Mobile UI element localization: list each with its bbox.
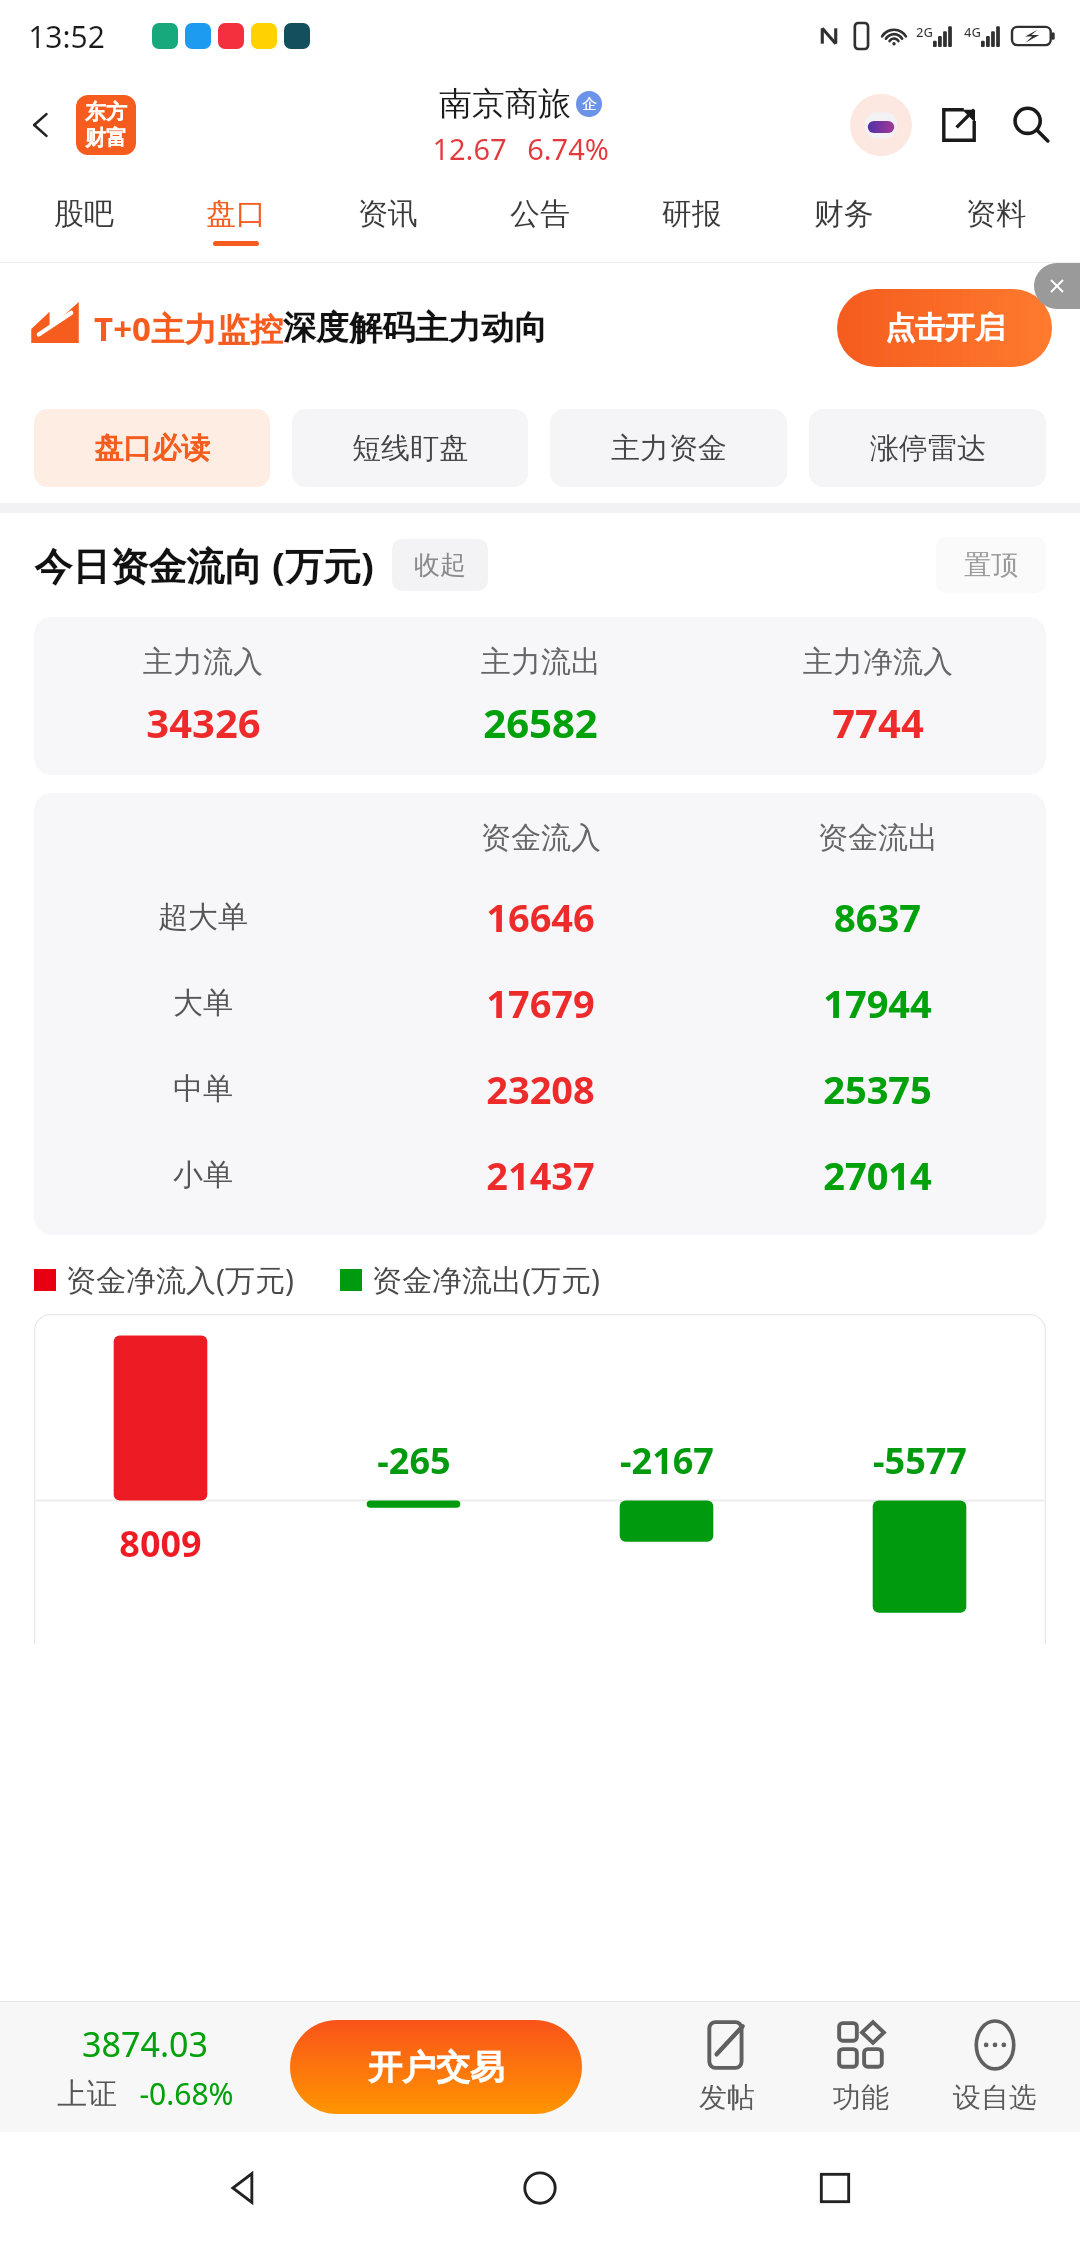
staticText: 资金净流入(万元)	[66, 1259, 294, 1300]
staticText: 资讯	[358, 195, 418, 233]
staticText: 上证	[57, 2075, 117, 2113]
staticText: 小单	[173, 1156, 233, 1194]
staticText: -0.68%	[139, 2073, 234, 2114]
button[interactable]: 开户交易	[290, 2020, 582, 2114]
staticText: 企	[582, 95, 597, 114]
staticText: 21437	[486, 1149, 595, 1201]
staticText: 功能	[833, 2080, 889, 2115]
staticText: 17679	[486, 977, 595, 1029]
staticText: 短线盯盘	[352, 430, 468, 467]
staticText: -265	[377, 1436, 451, 1485]
staticText: 点击开启	[885, 309, 1005, 347]
button[interactable]: 涨停雷达	[809, 409, 1046, 487]
button[interactable]: 功能	[794, 2020, 928, 2115]
button[interactable]: Home	[490, 2138, 590, 2238]
button[interactable]: 发帖	[660, 2020, 794, 2115]
staticText: 8009	[119, 1519, 202, 1568]
button[interactable]: Back	[14, 100, 68, 150]
staticText: 16646	[486, 891, 595, 943]
staticText: 超大单	[158, 898, 248, 936]
button[interactable]: 主力资金	[550, 409, 787, 487]
staticText: 发帖	[699, 2080, 755, 2115]
button[interactable]: Recents	[785, 2138, 885, 2238]
staticText: 股吧	[54, 195, 114, 233]
button[interactable]: 短线盯盘	[292, 409, 528, 487]
button[interactable]: Search	[1000, 94, 1062, 156]
button[interactable]: 财务	[768, 178, 920, 262]
staticText: 3874.03	[82, 2021, 208, 2067]
button[interactable]: Eastmoney	[76, 95, 136, 155]
staticText: -5577	[873, 1436, 967, 1485]
button[interactable]: Close ad	[1034, 263, 1080, 309]
button[interactable]: 盘口必读	[34, 409, 270, 487]
button[interactable]: 研报	[616, 178, 768, 262]
button[interactable]: 3874.03	[0, 2021, 290, 2114]
staticText: 23208	[486, 1063, 595, 1115]
staticText: 深度解码主力动向	[283, 307, 547, 349]
staticText: 资金净流出(万元)	[372, 1259, 600, 1300]
staticText: -2167	[620, 1436, 714, 1485]
button[interactable]: 资料	[920, 178, 1072, 262]
staticText: 主力流入	[143, 643, 263, 681]
staticText: 27014	[823, 1149, 932, 1201]
button[interactable]: 股吧	[8, 178, 160, 262]
button[interactable]: 盘口	[160, 178, 312, 262]
staticText: 4G	[964, 23, 981, 41]
button[interactable]: 资讯	[312, 178, 464, 262]
staticText: 主力资金	[611, 430, 727, 467]
button[interactable]: 收起	[392, 539, 488, 591]
staticText: 东方	[85, 99, 127, 125]
staticText: 13:52	[28, 16, 105, 57]
staticText: 资金流出	[818, 819, 938, 857]
staticText: 收起	[414, 549, 466, 582]
button[interactable]: 公告	[464, 178, 616, 262]
staticText: 盘口必读	[94, 430, 210, 467]
staticText: 26582	[483, 695, 598, 749]
button[interactable]: Back	[195, 2138, 295, 2238]
button[interactable]: 置顶	[936, 537, 1046, 593]
button[interactable]: Share	[928, 94, 990, 156]
staticText: 8637	[834, 891, 921, 943]
staticText: 6.74%	[527, 129, 609, 168]
staticText: 置顶	[964, 548, 1018, 582]
staticText: 公告	[510, 195, 570, 233]
staticText: 资金流入	[481, 819, 601, 857]
staticText: 主力流出	[481, 643, 601, 681]
staticText: 大单	[173, 984, 233, 1022]
staticText: 设自选	[953, 2080, 1037, 2115]
staticText: 今日资金流向 (万元)	[34, 539, 374, 591]
staticText: 盘口	[206, 195, 266, 233]
staticText: 中单	[173, 1070, 233, 1108]
staticText: 主力净流入	[803, 643, 953, 681]
staticText: T+0主力监控	[94, 306, 283, 351]
staticText: 南京商旅	[439, 83, 571, 125]
button[interactable]: 设自选	[928, 2020, 1062, 2115]
staticText: 17944	[823, 977, 932, 1029]
staticText: 财富	[85, 125, 127, 151]
staticText: 财务	[814, 195, 874, 233]
staticText: 34326	[146, 695, 261, 749]
button[interactable]: 点击开启	[837, 289, 1052, 367]
staticText: 2G	[916, 23, 933, 41]
staticText: 涨停雷达	[870, 430, 986, 467]
staticText: 开户交易	[368, 2046, 504, 2089]
staticText: 25375	[823, 1063, 932, 1115]
button[interactable]: AI assistant	[850, 94, 912, 156]
staticText: 12.67	[432, 129, 507, 168]
staticText: 研报	[662, 195, 722, 233]
staticText: 7744	[832, 695, 924, 749]
staticText: 资料	[966, 195, 1026, 233]
